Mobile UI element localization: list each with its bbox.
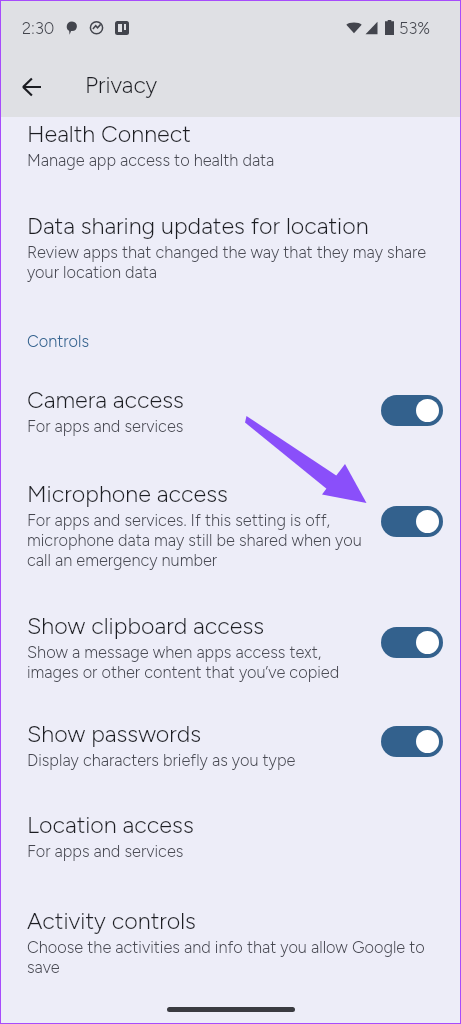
staticText: For apps and services <box>27 841 184 861</box>
button[interactable]: Health Connect <box>27 120 427 170</box>
button[interactable]: Location access <box>27 811 427 861</box>
button[interactable]: Show passwords <box>27 720 367 770</box>
button[interactable]: Back <box>9 64 54 109</box>
staticText: For apps and services <box>27 416 184 436</box>
staticText: Data sharing updates for location <box>27 212 369 240</box>
button[interactable]: Activity controls <box>27 907 427 977</box>
button[interactable]: Toggle Microphone access <box>381 506 443 537</box>
button[interactable]: Camera access <box>27 386 367 436</box>
button[interactable]: Microphone access <box>27 480 367 570</box>
staticText: Display characters briefly as you type <box>27 750 296 770</box>
staticText: Location access <box>27 811 194 839</box>
staticText: Review apps that changed the way that th… <box>27 242 435 282</box>
staticText: 2:30 <box>22 18 55 38</box>
staticText: Show a message when apps access text, im… <box>27 642 367 682</box>
staticText: Activity controls <box>27 907 196 935</box>
staticText: For apps and services. If this setting i… <box>27 510 367 570</box>
button[interactable]: Controls <box>27 331 90 351</box>
button[interactable]: Show clipboard access <box>27 612 367 682</box>
staticText: Microphone access <box>27 480 228 508</box>
staticText: Controls <box>27 331 90 351</box>
staticText: Camera access <box>27 386 184 414</box>
staticText: Health Connect <box>27 120 191 148</box>
staticText: Show clipboard access <box>27 612 265 640</box>
staticText: Privacy <box>85 71 158 99</box>
staticText: 53% <box>399 18 431 38</box>
staticText: Show passwords <box>27 720 202 748</box>
staticText: Choose the activities and info that you … <box>27 937 427 977</box>
button[interactable]: Toggle Camera access <box>381 395 443 426</box>
button[interactable]: Toggle Show clipboard access <box>381 627 443 658</box>
button[interactable]: Data sharing updates for location <box>27 212 435 282</box>
button[interactable]: Toggle Show passwords <box>381 726 443 757</box>
staticText: Manage app access to health data <box>27 150 275 170</box>
